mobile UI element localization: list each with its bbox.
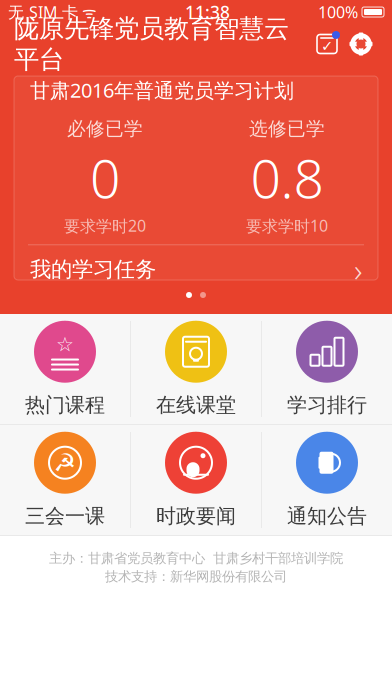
staticText: 11:38 bbox=[185, 0, 230, 23]
staticText: 主办：甘肃省党员教育中心 甘肃乡村干部培训学院 bbox=[49, 550, 343, 566]
staticText: › bbox=[354, 248, 362, 290]
button[interactable]: 我的学习任务 bbox=[14, 245, 378, 293]
staticText: 学习排行 bbox=[287, 393, 367, 417]
staticText: ☆ bbox=[56, 333, 74, 356]
staticText: 甘肃2016年普通党员学习计划 bbox=[30, 77, 294, 103]
staticText: 0 bbox=[90, 142, 120, 213]
staticText: 三会一课 bbox=[25, 504, 105, 528]
button[interactable]: ☭ bbox=[0, 425, 130, 535]
button[interactable]: 设置 bbox=[344, 31, 378, 57]
staticText: 100% bbox=[318, 1, 358, 23]
staticText: 0.8 bbox=[250, 142, 323, 213]
staticText: 通知公告 bbox=[287, 504, 367, 528]
staticText: 我的学习任务 bbox=[30, 256, 156, 282]
staticText: 要求学时20 bbox=[64, 215, 146, 236]
button[interactable]: 签到 bbox=[310, 31, 344, 57]
staticText: ✓ bbox=[321, 38, 333, 54]
staticText: 无 SIM 卡 bbox=[8, 1, 78, 23]
button[interactable]: 在线课堂 bbox=[131, 314, 261, 424]
staticText: 要求学时10 bbox=[246, 215, 328, 236]
staticText: 热门课程 bbox=[25, 393, 105, 417]
staticText: 必修已学 bbox=[67, 117, 143, 140]
staticText: ☭ bbox=[53, 448, 76, 477]
button[interactable]: 通知公告 bbox=[262, 425, 392, 535]
staticText: ᯤ bbox=[78, 1, 97, 23]
button[interactable]: ☆ bbox=[0, 314, 130, 424]
staticText: 技术支持：新华网股份有限公司 bbox=[105, 568, 287, 585]
staticText: 在线课堂 bbox=[156, 393, 236, 417]
button[interactable]: 学习排行 bbox=[262, 314, 392, 424]
staticText: 时政要闻 bbox=[156, 504, 236, 528]
button[interactable]: 时政要闻 bbox=[131, 425, 261, 535]
staticText: 陇原先锋党员教育智慧云平台 bbox=[14, 13, 289, 75]
staticText: 选修已学 bbox=[249, 117, 325, 140]
